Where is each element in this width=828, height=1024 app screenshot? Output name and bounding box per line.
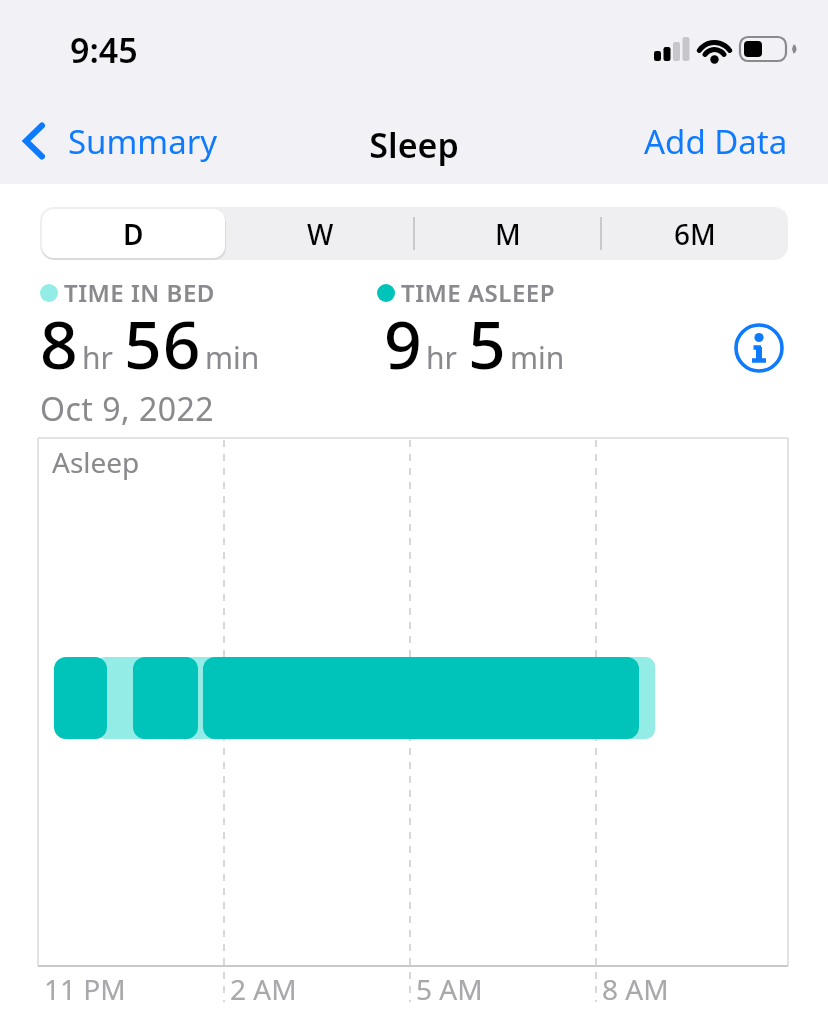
- staticText: TIME ASLEEP: [401, 276, 555, 309]
- staticText: 8: [40, 298, 79, 388]
- staticText: hr: [426, 337, 457, 378]
- staticText: min: [510, 337, 565, 378]
- staticText: 56: [124, 298, 202, 388]
- staticText: min: [205, 337, 260, 378]
- staticText: 5 AM: [416, 970, 483, 1008]
- staticText: 9: [384, 298, 423, 388]
- staticText: Add Data: [644, 119, 788, 164]
- button[interactable]: 6M: [601, 207, 788, 260]
- button[interactable]: [731, 320, 787, 376]
- staticText: 9:45: [70, 27, 138, 73]
- staticText: 5: [468, 298, 507, 388]
- staticText: hr: [82, 337, 113, 378]
- button[interactable]: D: [40, 207, 227, 260]
- staticText: M: [495, 215, 521, 253]
- staticText: Asleep: [52, 443, 140, 481]
- button[interactable]: Add Data: [608, 112, 788, 170]
- staticText: Sleep: [0, 122, 828, 168]
- staticText: 11 PM: [44, 970, 126, 1008]
- staticText: 8 AM: [602, 970, 669, 1008]
- staticText: Summary: [68, 119, 218, 164]
- staticText: Oct 9, 2022: [40, 387, 215, 431]
- staticText: TIME IN BED: [64, 276, 215, 309]
- staticText: W: [307, 215, 334, 253]
- staticText: 6M: [674, 215, 716, 253]
- staticText: D: [123, 215, 144, 253]
- staticText: 2 AM: [230, 970, 297, 1008]
- button[interactable]: Summary: [18, 112, 248, 170]
- button[interactable]: W: [227, 207, 414, 260]
- button[interactable]: M: [414, 207, 601, 260]
